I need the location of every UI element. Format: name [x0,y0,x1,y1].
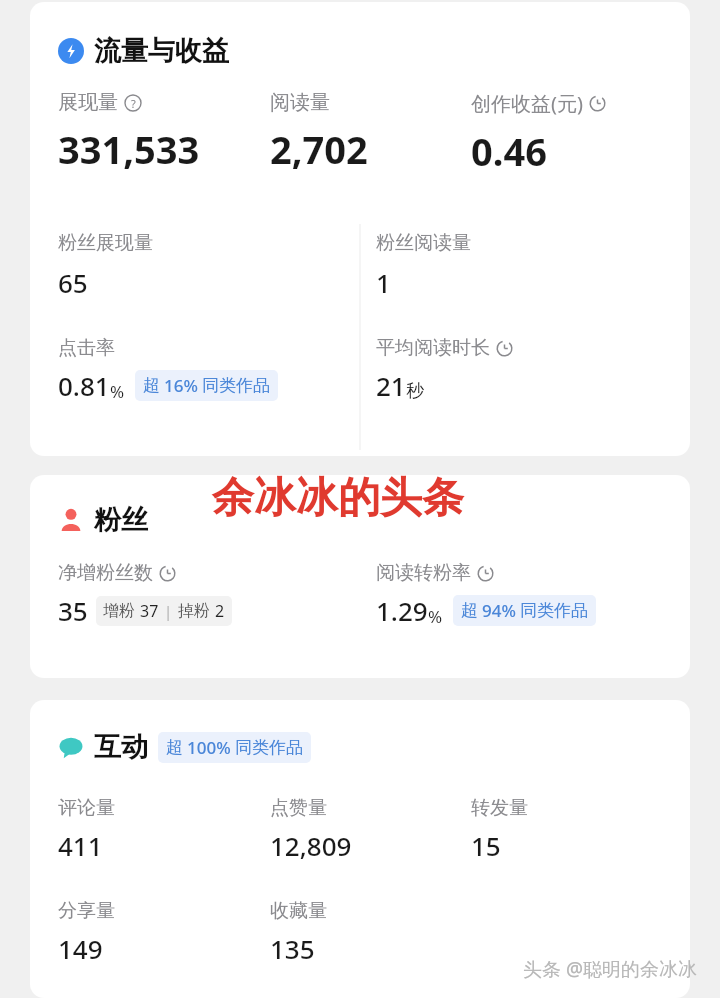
staticText: 头条 @聪明的余冰冰 [523,956,698,982]
button[interactable]: 流量 [58,34,229,68]
staticText: 转发量 [471,796,528,820]
staticText: 阅读转粉率 [376,561,471,585]
staticText: 2,702 [270,123,368,175]
staticText: | [164,601,173,621]
other: 粉丝 [58,507,84,533]
staticText: 创作收益(元) [471,90,583,117]
staticText: 15 [471,828,501,863]
staticText: 流量与收益 [94,34,229,68]
staticText: 增粉 [103,601,135,621]
staticText: 35 [58,593,88,628]
staticText: 65 [58,265,88,300]
staticText: 37 [140,600,159,622]
staticText: 同类作品 [202,375,270,396]
staticText: 331,533 [58,123,200,175]
staticText: 1 [376,265,391,300]
staticText: ? [131,96,136,111]
staticText: 评论量 [58,796,115,820]
staticText: 100% [187,736,231,759]
staticText: 超 [461,600,478,621]
staticText: 1.29 [376,593,428,628]
staticText: 平均阅读时长 [376,336,490,360]
button[interactable]: 互动 [30,700,690,998]
staticText: 余冰冰的头条 [212,472,464,525]
staticText: 16% [164,374,198,397]
button[interactable]: 超 [158,732,311,763]
staticText: 0.81 [58,368,110,403]
staticText: 135 [270,931,315,966]
staticText: 2 [215,600,225,622]
staticText: 秒 [406,380,424,403]
staticText: 阅读量 [270,90,330,115]
staticText: 粉丝展现量 [58,231,153,255]
staticText: 掉粉 [178,601,210,621]
staticText: 超 [166,737,183,758]
other: 互动 [58,734,84,760]
staticText: 点赞量 [270,796,327,820]
staticText: 411 [58,828,103,863]
staticText: 净增粉丝数 [58,561,153,585]
staticText: 12,809 [270,828,352,863]
staticText: 94% [482,599,516,622]
staticText: 同类作品 [520,600,588,621]
button[interactable]: 增粉 [96,596,232,626]
button[interactable]: 粉丝 [58,503,148,537]
other: 流量 [58,38,84,64]
staticText: % [110,380,125,403]
staticText: 0.46 [471,125,547,177]
staticText: 互动 [94,730,148,764]
staticText: 收藏量 [270,899,327,923]
staticText: 149 [58,931,103,966]
staticText: 21 [376,368,406,403]
staticText: 粉丝 [94,503,148,537]
staticText: % [428,605,443,628]
staticText: 展现量 [58,90,118,115]
staticText: 点击率 [58,336,115,360]
staticText: 分享量 [58,899,115,923]
button[interactable]: 流量 [30,2,690,456]
button[interactable]: 超 [135,370,278,401]
button[interactable]: 互动 [58,730,311,764]
staticText: 超 [143,375,160,396]
button[interactable]: 粉丝 [30,475,690,678]
button[interactable]: 超 [453,595,596,626]
staticText: 同类作品 [235,737,303,758]
staticText: 粉丝阅读量 [376,231,471,255]
